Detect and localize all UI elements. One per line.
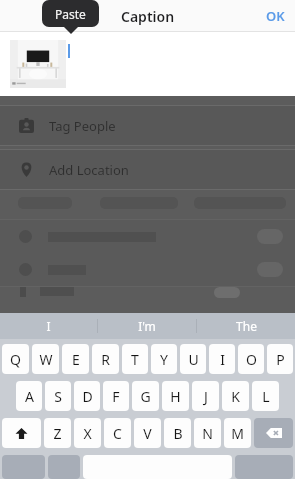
staticText: E [72, 350, 80, 369]
button[interactable]: I [0, 313, 97, 339]
staticText: J [204, 387, 208, 406]
staticText: Paste [55, 6, 86, 22]
button[interactable]: O [238, 344, 264, 374]
staticText: Tag People [49, 117, 116, 135]
staticText: Q [10, 350, 21, 369]
staticText: O [246, 350, 257, 369]
staticText: F [112, 387, 120, 406]
staticText: X [83, 424, 92, 443]
button[interactable]: OK [256, 1, 295, 31]
button[interactable]: I'm [98, 313, 196, 339]
button[interactable]: X [74, 418, 101, 448]
button[interactable]: A [16, 381, 42, 411]
staticText: C [113, 424, 122, 443]
staticText: Z [53, 424, 62, 443]
button[interactable]: I [209, 344, 235, 374]
staticText: V [143, 424, 152, 443]
button[interactable]: Photo thumbnail [10, 40, 66, 88]
staticText: I [220, 350, 225, 369]
button[interactable]: The [197, 313, 295, 339]
button[interactable]: M [224, 418, 251, 448]
staticText: D [82, 387, 93, 406]
staticText: Add Location [49, 161, 129, 179]
button[interactable]: P [267, 344, 293, 374]
staticText: S [54, 387, 62, 406]
button[interactable]: C [104, 418, 131, 448]
button[interactable]: R [92, 344, 119, 374]
button[interactable]: K [222, 381, 249, 411]
button[interactable]: Emoji [48, 455, 80, 479]
staticText: N [202, 424, 213, 443]
button[interactable]: Y [151, 344, 177, 374]
button[interactable]: Add Location [0, 150, 295, 189]
staticText: P [276, 350, 285, 369]
staticText: I'm [138, 318, 156, 334]
button[interactable]: B [164, 418, 191, 448]
button[interactable]: N [194, 418, 221, 448]
button[interactable]: Tag People [0, 106, 295, 145]
staticText: A [25, 387, 34, 406]
button[interactable]: Numbers [2, 455, 45, 479]
button[interactable]: W [32, 344, 59, 374]
button[interactable]: E [62, 344, 89, 374]
staticText: H [170, 387, 181, 406]
staticText: Caption [121, 7, 175, 26]
staticText: K [231, 387, 240, 406]
button[interactable]: Q [2, 344, 29, 374]
staticText: OK [266, 7, 285, 25]
staticText: L [262, 387, 270, 406]
button[interactable]: T [122, 344, 148, 374]
button[interactable]: D [74, 381, 100, 411]
staticText: T [131, 350, 139, 369]
button[interactable]: S [45, 381, 71, 411]
staticText: B [173, 424, 183, 443]
button[interactable]: V [134, 418, 161, 448]
staticText: U [188, 350, 199, 369]
staticText: I [46, 318, 51, 334]
button[interactable]: G [132, 381, 159, 411]
staticText: W [39, 350, 53, 369]
button[interactable]: J [192, 381, 219, 411]
button[interactable]: H [162, 381, 189, 411]
button[interactable]: Shift [2, 418, 41, 448]
button[interactable]: Paste [42, 0, 99, 27]
staticText: G [140, 387, 151, 406]
button[interactable]: Backspace [254, 418, 293, 448]
staticText: The [236, 318, 257, 334]
button[interactable]: U [180, 344, 206, 374]
button[interactable]: Z [44, 418, 71, 448]
staticText: R [101, 350, 110, 369]
staticText: Y [160, 350, 168, 369]
button[interactable]: L [252, 381, 279, 411]
staticText: M [231, 424, 244, 443]
button[interactable]: F [103, 381, 129, 411]
